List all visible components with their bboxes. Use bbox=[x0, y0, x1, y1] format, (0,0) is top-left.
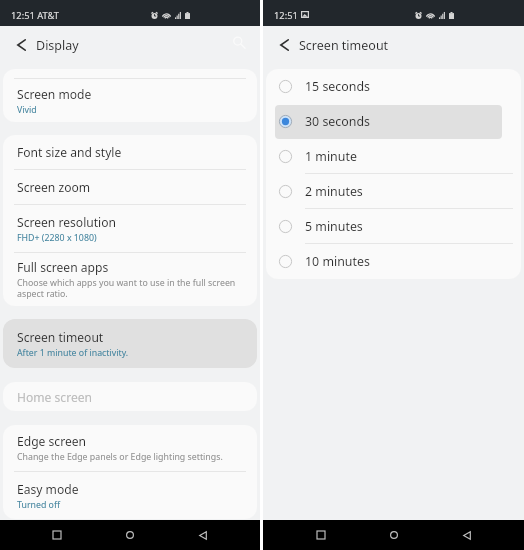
staticText: Choose which apps you want to use in the… bbox=[17, 277, 236, 300]
staticText: 12:51 AT&T bbox=[11, 9, 59, 22]
button[interactable]: Screen mode bbox=[3, 79, 257, 122]
button[interactable]: 1 minute bbox=[266, 139, 521, 174]
staticText: FHD+ (2280 x 1080) bbox=[17, 232, 97, 244]
button[interactable]: Screen zoom bbox=[3, 170, 257, 204]
button[interactable]: Back bbox=[453, 521, 481, 549]
button[interactable]: Easy mode bbox=[3, 472, 257, 519]
button[interactable]: 5 minutes bbox=[266, 209, 521, 244]
button[interactable]: Recent apps bbox=[43, 521, 71, 549]
button[interactable]: Navigate up bbox=[7, 31, 35, 59]
staticText: Full screen apps bbox=[17, 259, 109, 275]
staticText: Screen timeout bbox=[299, 37, 389, 54]
button[interactable]: 15 seconds bbox=[266, 69, 521, 104]
button[interactable]: Edge screen bbox=[3, 425, 257, 471]
button[interactable]: Home bbox=[116, 521, 144, 549]
button[interactable]: Full screen apps bbox=[3, 253, 257, 306]
staticText: 5 minutes bbox=[305, 218, 363, 235]
staticText: Edge screen bbox=[17, 433, 87, 449]
staticText: Screen zoom bbox=[17, 179, 91, 195]
staticText: Turned off bbox=[17, 499, 60, 511]
button[interactable]: Font size and style bbox=[3, 135, 257, 169]
button[interactable]: Screen timeout bbox=[3, 319, 257, 368]
staticText: 15 seconds bbox=[305, 78, 370, 95]
button[interactable]: Home screen bbox=[3, 382, 257, 411]
button[interactable]: Home bbox=[380, 521, 408, 549]
button[interactable]: Screen resolution bbox=[3, 205, 257, 252]
staticText: Change the Edge panels or Edge lighting … bbox=[17, 451, 223, 463]
staticText: Easy mode bbox=[17, 481, 79, 497]
button[interactable]: 10 minutes bbox=[266, 244, 521, 279]
staticText: 10 minutes bbox=[305, 253, 370, 270]
staticText: 12:51 bbox=[274, 9, 298, 22]
staticText: After 1 minute of inactivity. bbox=[17, 347, 129, 359]
staticText: 2 minutes bbox=[305, 183, 363, 200]
staticText: Font size and style bbox=[17, 144, 122, 160]
staticText: Display bbox=[36, 37, 79, 54]
button[interactable]: Navigate up bbox=[270, 31, 298, 59]
button[interactable]: Recent apps bbox=[307, 521, 335, 549]
staticText: Screen timeout bbox=[17, 329, 104, 345]
button[interactable]: 2 minutes bbox=[266, 174, 521, 209]
button[interactable]: 30 seconds bbox=[266, 104, 521, 139]
staticText: 1 minute bbox=[305, 148, 357, 165]
button[interactable]: Back bbox=[189, 521, 217, 549]
staticText: Screen resolution bbox=[17, 214, 117, 230]
staticText: Home screen bbox=[17, 389, 93, 405]
staticText: 30 seconds bbox=[305, 113, 370, 130]
staticText: Screen mode bbox=[17, 86, 92, 102]
staticText: Vivid bbox=[17, 104, 37, 116]
